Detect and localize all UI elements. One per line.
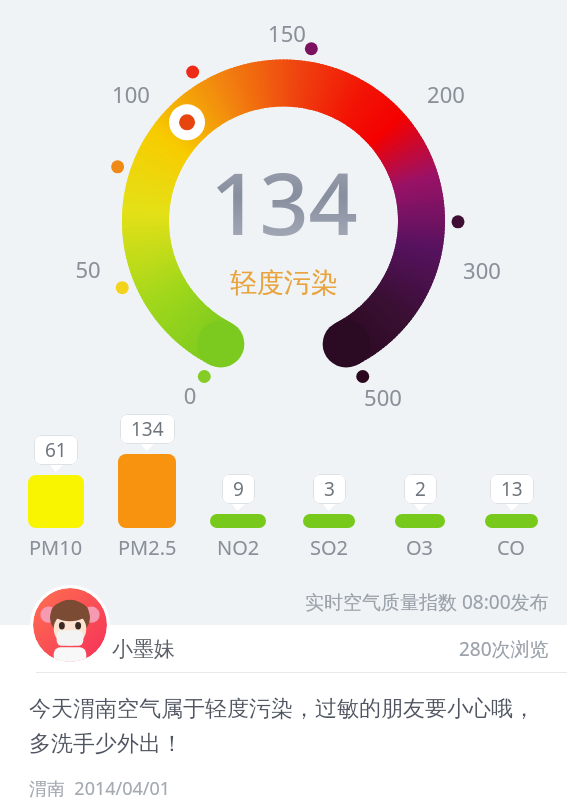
staticText: 200 <box>401 79 491 109</box>
staticText: 今天渭南空气属于轻度污染，过敏的朋友要小心哦， 多洗手少外出！ <box>29 695 536 758</box>
staticText: NO2 <box>217 534 260 561</box>
staticText: 50 <box>43 254 133 284</box>
staticText: 100 <box>86 79 176 109</box>
staticText: 9 <box>233 476 244 502</box>
staticText: 134 <box>131 416 164 442</box>
button[interactable]: 13 <box>469 414 553 561</box>
staticText: 61 <box>45 437 67 463</box>
button[interactable]: 2 <box>378 414 462 561</box>
staticText: 150 <box>242 18 332 48</box>
staticText: 0 <box>145 380 235 410</box>
staticText: 134 <box>210 143 358 260</box>
button[interactable]: 61 <box>14 414 98 561</box>
staticText: O3 <box>406 534 434 561</box>
button[interactable]: 9 <box>196 414 280 561</box>
button[interactable]: 小墨妹 <box>112 625 549 672</box>
staticText: PM10 <box>29 534 83 561</box>
staticText: 300 <box>437 255 527 285</box>
button[interactable]: 用户头像 小墨妹 <box>33 588 107 662</box>
button[interactable]: 134 <box>105 414 189 561</box>
staticText: PM2.5 <box>118 534 177 561</box>
staticText: 渭南 2014/04/01 <box>29 776 171 800</box>
staticText: CO <box>497 534 525 561</box>
staticText: 小墨妹 <box>112 636 175 662</box>
button[interactable]: 3 <box>287 414 371 561</box>
staticText: 实时空气质量指数 08:00发布 <box>305 589 549 615</box>
staticText: 13 <box>501 476 523 502</box>
staticText: 3 <box>324 476 335 502</box>
staticText: 500 <box>338 382 428 412</box>
staticText: 280次浏览 <box>459 636 549 662</box>
staticText: SO2 <box>310 534 349 561</box>
staticText: 2 <box>415 476 426 502</box>
staticText: 轻度污染 <box>230 266 338 300</box>
